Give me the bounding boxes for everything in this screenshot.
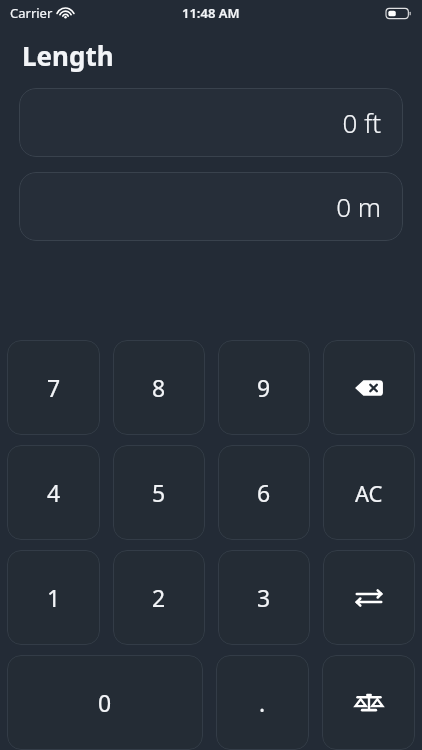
staticText: 5 xyxy=(152,477,166,508)
button[interactable]: Backspace xyxy=(323,340,415,435)
staticText: 7 xyxy=(47,372,61,403)
button[interactable]: 4 xyxy=(7,445,100,540)
staticText: 0 xyxy=(98,687,112,718)
button[interactable]: AC xyxy=(323,445,415,540)
staticText: 11:48 AM xyxy=(182,4,240,22)
button[interactable]: 2 xyxy=(113,550,205,645)
staticText: 9 xyxy=(257,372,271,403)
staticText: 2 xyxy=(152,582,166,613)
button[interactable]: 9 xyxy=(218,340,310,435)
button[interactable]: 0 ft xyxy=(19,88,403,157)
button[interactable]: 8 xyxy=(113,340,205,435)
button[interactable]: 0 m xyxy=(19,172,403,241)
staticText: 1 xyxy=(47,582,61,613)
button[interactable]: Swap units xyxy=(323,550,415,645)
staticText: 0 m xyxy=(336,189,381,224)
staticText: Length xyxy=(22,38,114,73)
button[interactable]: 3 xyxy=(218,550,310,645)
staticText: 0 ft xyxy=(342,105,381,140)
staticText: 4 xyxy=(47,477,61,508)
button[interactable]: 6 xyxy=(218,445,310,540)
button[interactable]: . xyxy=(216,655,309,750)
staticText: AC xyxy=(355,478,383,508)
button[interactable]: 0 xyxy=(7,655,203,750)
staticText: 8 xyxy=(152,372,166,403)
staticText: . xyxy=(259,687,266,718)
staticText: Carrier xyxy=(10,4,53,22)
staticText: 6 xyxy=(257,477,271,508)
button[interactable]: 7 xyxy=(7,340,100,435)
button[interactable]: Change unit category xyxy=(322,655,415,750)
staticText: 3 xyxy=(257,582,271,613)
button[interactable]: 1 xyxy=(7,550,100,645)
button[interactable]: 5 xyxy=(113,445,205,540)
